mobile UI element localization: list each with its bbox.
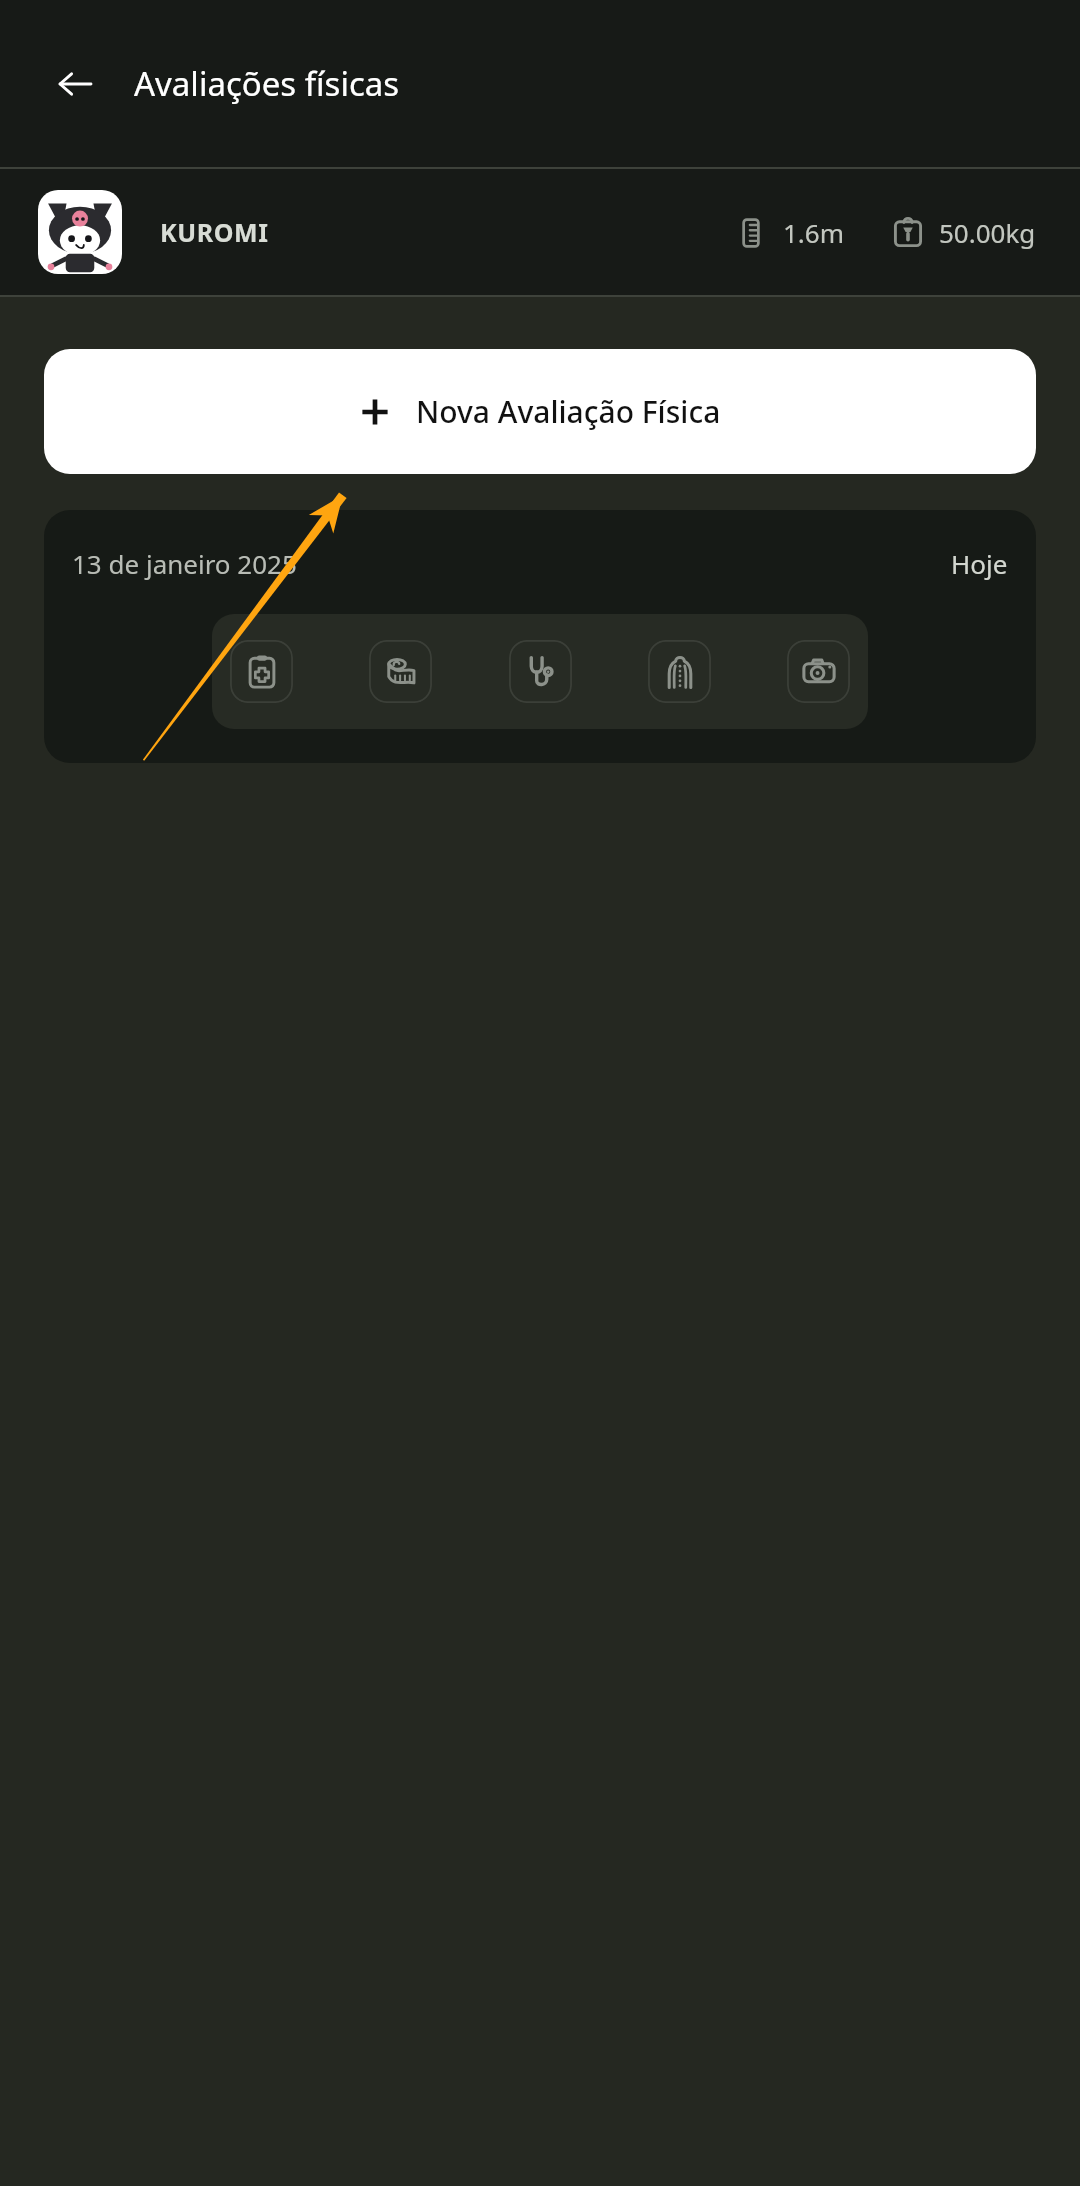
staticText: 1.6m	[783, 215, 845, 250]
button[interactable]: Back	[44, 53, 106, 115]
staticText: KUROMI	[160, 215, 269, 249]
staticText: 13 de janeiro 2025	[72, 546, 297, 581]
staticText: Nova Avaliação Física	[416, 391, 721, 432]
button[interactable]: KUROMI	[0, 169, 1080, 295]
staticText: Hoje	[951, 546, 1008, 581]
button[interactable]: Posture	[648, 640, 711, 703]
button[interactable]: 13 de janeiro 2025	[44, 510, 1036, 763]
staticText: 50.00kg	[939, 215, 1036, 250]
button[interactable]: Photos	[787, 640, 850, 703]
button[interactable]: Nova Avaliação Física	[44, 349, 1036, 474]
button[interactable]: Medical record	[230, 640, 293, 703]
button[interactable]: Clinical exam	[509, 640, 572, 703]
staticText: Avaliações físicas	[134, 61, 400, 106]
button[interactable]: Measurements	[369, 640, 432, 703]
